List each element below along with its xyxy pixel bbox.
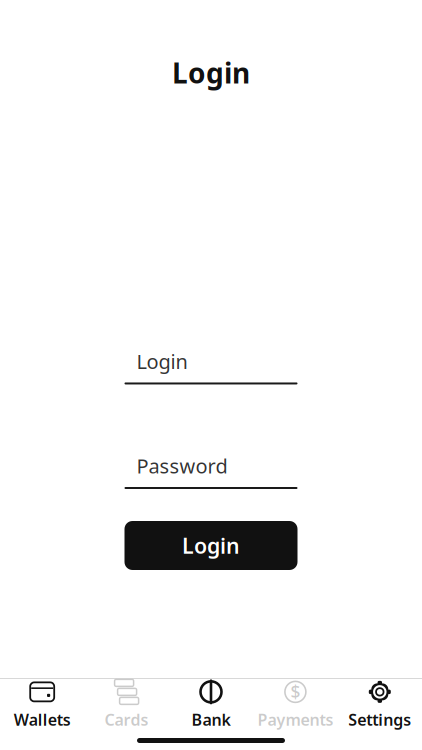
button[interactable]: Settings bbox=[338, 679, 422, 731]
button[interactable]: $ bbox=[253, 679, 338, 731]
button[interactable]: Bank bbox=[169, 679, 253, 731]
staticText: Payments bbox=[257, 709, 333, 730]
staticText: Cards bbox=[105, 709, 149, 730]
staticText: Wallets bbox=[14, 709, 71, 730]
staticText: Settings bbox=[348, 709, 411, 730]
staticText: $ bbox=[290, 680, 300, 703]
button[interactable]: Login bbox=[124, 521, 297, 570]
staticText: Login bbox=[136, 348, 187, 374]
staticText: Bank bbox=[191, 709, 230, 730]
button[interactable]: Wallets bbox=[0, 679, 84, 731]
staticText: Login bbox=[182, 531, 240, 560]
button[interactable]: Cards bbox=[84, 679, 169, 731]
staticText: Password bbox=[136, 452, 227, 479]
staticText: Login bbox=[172, 54, 250, 91]
